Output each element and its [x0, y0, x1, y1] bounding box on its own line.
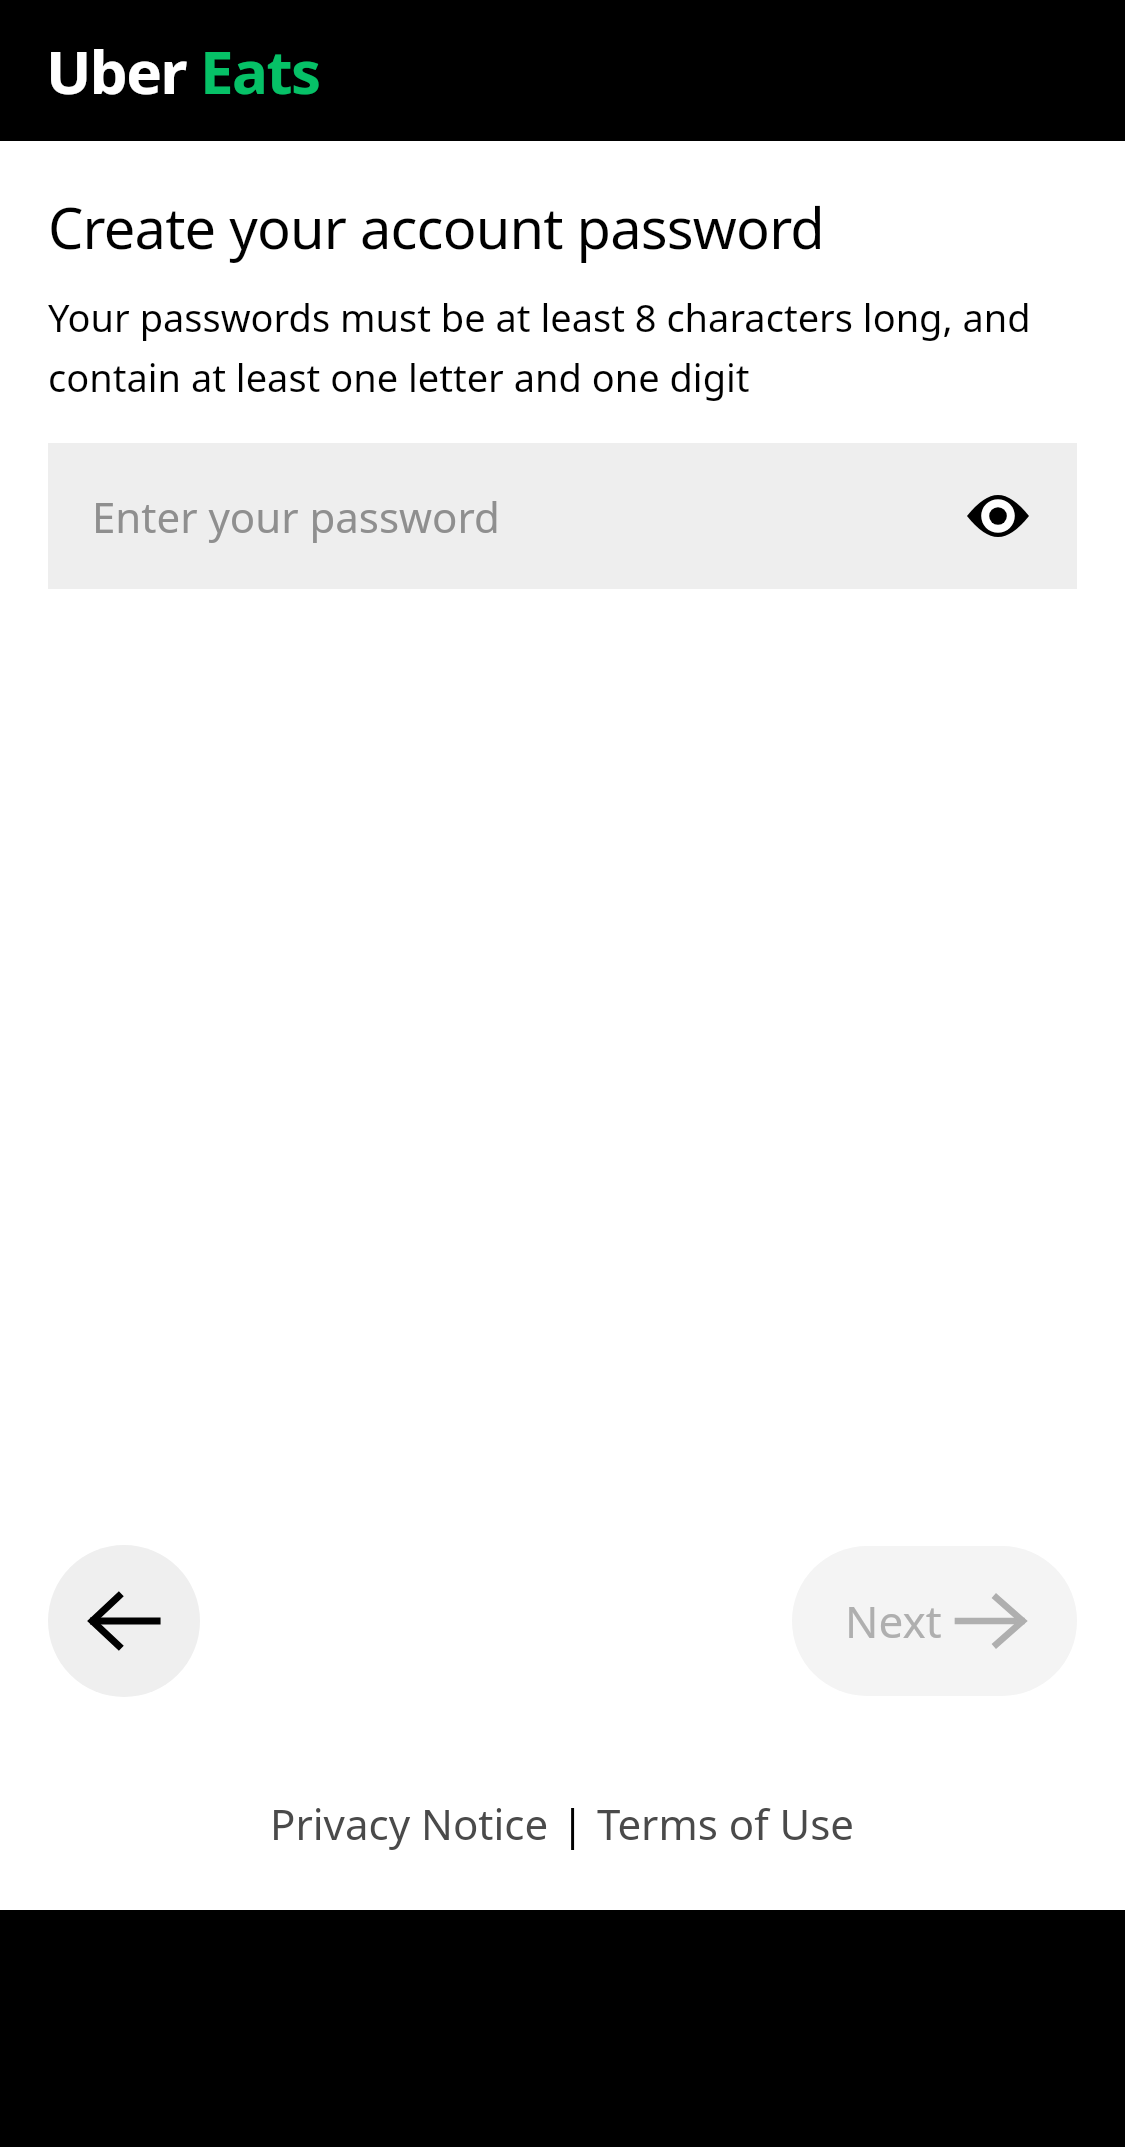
- staticText: Uber Eats: [46, 30, 320, 112]
- button[interactable]: Terms of Use: [593, 1795, 859, 1852]
- button[interactable]: Next: [792, 1546, 1077, 1696]
- button[interactable]: Show password: [959, 477, 1037, 555]
- staticText: Next: [845, 1591, 942, 1651]
- button[interactable]: Privacy Notice: [266, 1795, 553, 1852]
- button[interactable]: Enter your password: [48, 443, 1077, 589]
- staticText: Create your account password: [48, 189, 824, 265]
- staticText: |: [561, 1795, 585, 1852]
- staticText: Your passwords must be at least 8 charac…: [48, 291, 1081, 403]
- staticText: Enter your password: [92, 488, 959, 545]
- button[interactable]: Back: [48, 1545, 200, 1697]
